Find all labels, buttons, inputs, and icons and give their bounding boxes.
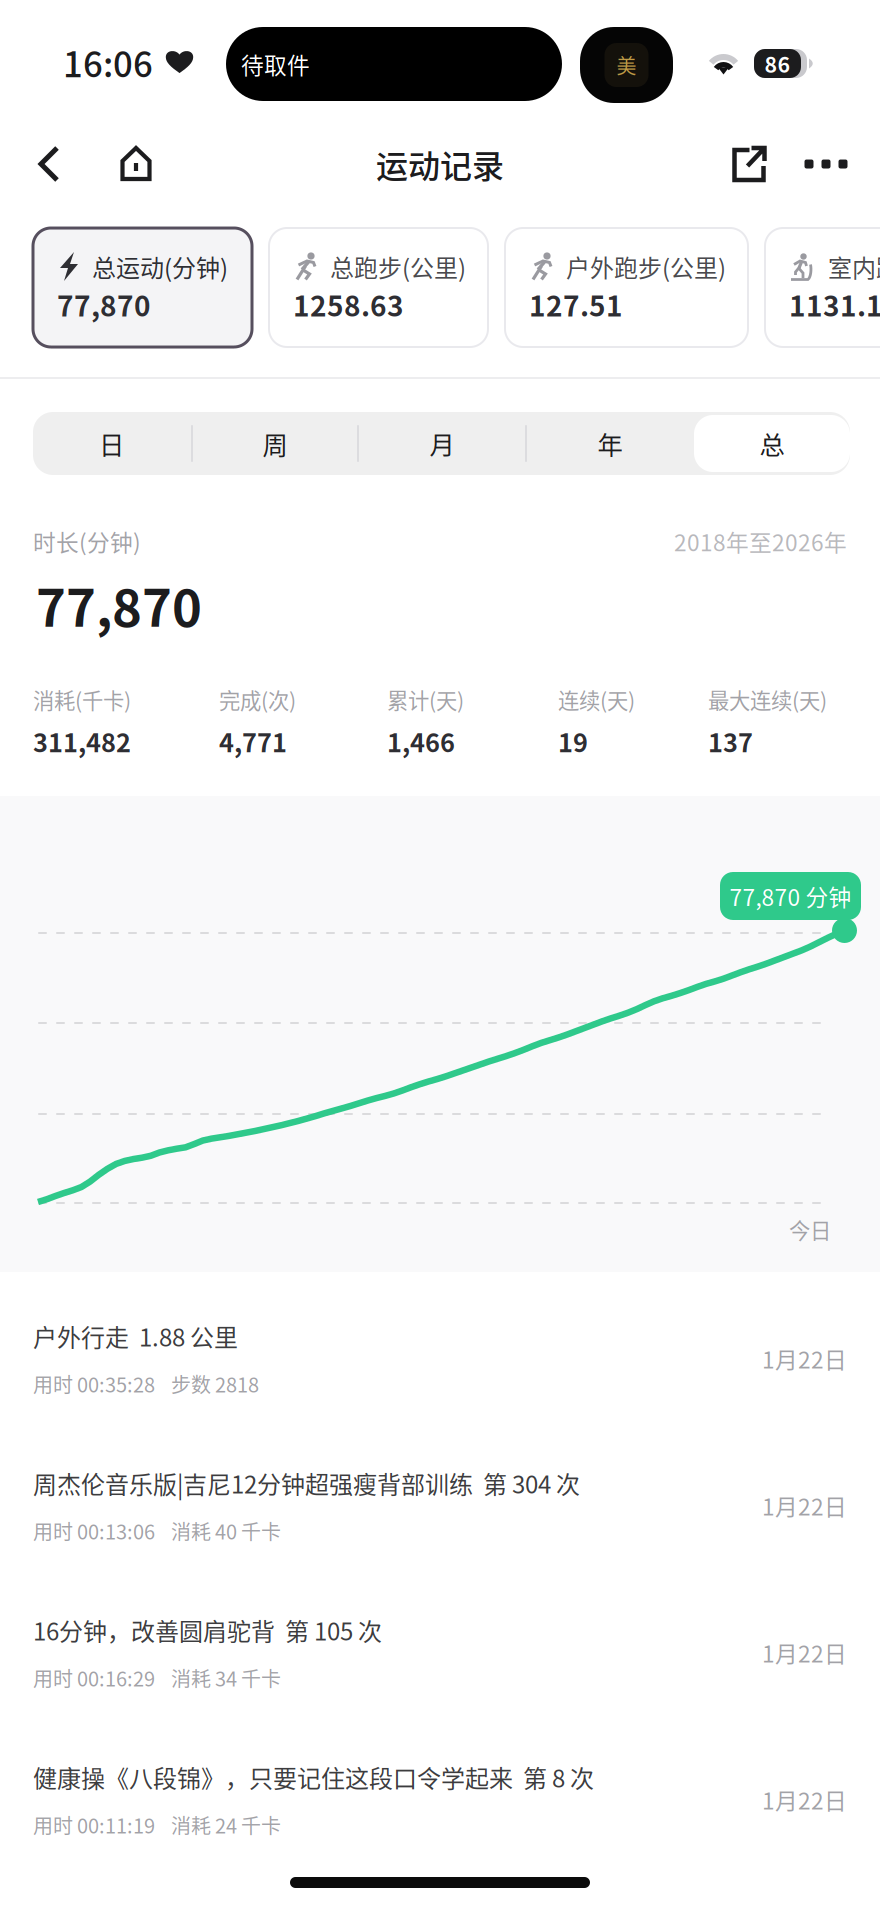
staticText: 2018年至2026年 <box>674 525 847 558</box>
button[interactable]: 总运动(分钟) <box>33 228 252 347</box>
button[interactable]: More options <box>800 135 852 193</box>
staticText: 总运动(分钟) <box>92 249 228 284</box>
staticText: 室内跑步(公里) <box>828 249 880 284</box>
staticText: 周 <box>262 425 287 462</box>
staticText: 1月22日 <box>762 1342 847 1375</box>
button[interactable]: 年 <box>527 412 693 475</box>
button[interactable]: 户外跑步(公里) <box>505 228 748 347</box>
staticText: 137 <box>708 723 753 760</box>
staticText: 77,870 <box>57 284 151 324</box>
staticText: 1,466 <box>387 723 455 760</box>
staticText: 周杰伦音乐版|吉尼12分钟超强瘦背部训练 第 304 次 <box>33 1466 580 1500</box>
staticText: 美 <box>616 50 636 79</box>
staticText: 时长(分钟) <box>33 525 141 558</box>
button[interactable]: Home <box>110 135 162 193</box>
staticText: 用时 00:16:29 消耗 34 千卡 <box>33 1663 281 1692</box>
button[interactable]: 周 <box>193 412 357 475</box>
staticText: 用时 00:11:19 消耗 24 千卡 <box>33 1810 281 1839</box>
staticText: 累计(天) <box>387 684 464 715</box>
staticText: 77,870 <box>36 568 202 641</box>
staticText: 127.51 <box>529 284 623 324</box>
staticText: 16分钟，改善圆肩驼背 第 105 次 <box>33 1613 382 1647</box>
staticText: 今日 <box>789 1214 831 1245</box>
button[interactable]: 日 <box>32 412 191 475</box>
staticText: 77,870 分钟 <box>729 880 851 912</box>
staticText: 消耗(千卡) <box>33 684 131 715</box>
staticText: 日 <box>99 425 124 462</box>
staticText: 1月22日 <box>762 1636 847 1669</box>
staticText: 总跑步(公里) <box>330 249 466 284</box>
button[interactable]: 总跑步(公里) <box>269 228 488 347</box>
staticText: 运动记录 <box>376 141 504 187</box>
button[interactable]: 健康操《八段锦》，只要记住这段口令学起来 第 8 次 <box>0 1726 880 1873</box>
staticText: 最大连续(天) <box>708 684 827 715</box>
staticText: 1月22日 <box>762 1489 847 1522</box>
button[interactable]: 周杰伦音乐版|吉尼12分钟超强瘦背部训练 第 304 次 <box>0 1432 880 1579</box>
staticText: 1月22日 <box>762 1783 847 1816</box>
staticText: 完成(次) <box>219 684 296 715</box>
button[interactable]: 总 <box>693 412 851 475</box>
staticText: 用时 00:13:06 消耗 40 千卡 <box>33 1516 281 1545</box>
staticText: 311,482 <box>33 723 131 760</box>
staticText: 年 <box>597 425 622 462</box>
button[interactable]: 户外行走 1.88 公里 <box>0 1285 880 1432</box>
staticText: 4,771 <box>219 723 287 760</box>
button[interactable]: 月 <box>359 412 525 475</box>
staticText: 月 <box>429 425 454 462</box>
button[interactable]: 16分钟，改善圆肩驼背 第 105 次 <box>0 1579 880 1726</box>
staticText: 1258.63 <box>293 284 404 324</box>
staticText: 19 <box>558 723 588 760</box>
button[interactable]: Share <box>724 135 776 193</box>
staticText: 户外行走 1.88 公里 <box>33 1319 238 1353</box>
staticText: 16:06 <box>63 37 153 87</box>
staticText: 连续(天) <box>558 684 635 715</box>
button[interactable]: 室内跑步(公里) <box>765 228 880 347</box>
staticText: 户外跑步(公里) <box>566 249 726 284</box>
staticText: 1131.11 <box>789 284 880 324</box>
button[interactable]: Back <box>24 135 76 193</box>
staticText: 86 <box>764 48 790 79</box>
staticText: 健康操《八段锦》，只要记住这段口令学起来 第 8 次 <box>33 1760 594 1794</box>
staticText: 用时 00:35:28 步数 2818 <box>33 1369 259 1398</box>
staticText: 待取件 <box>241 48 310 80</box>
staticText: 总 <box>759 425 784 462</box>
